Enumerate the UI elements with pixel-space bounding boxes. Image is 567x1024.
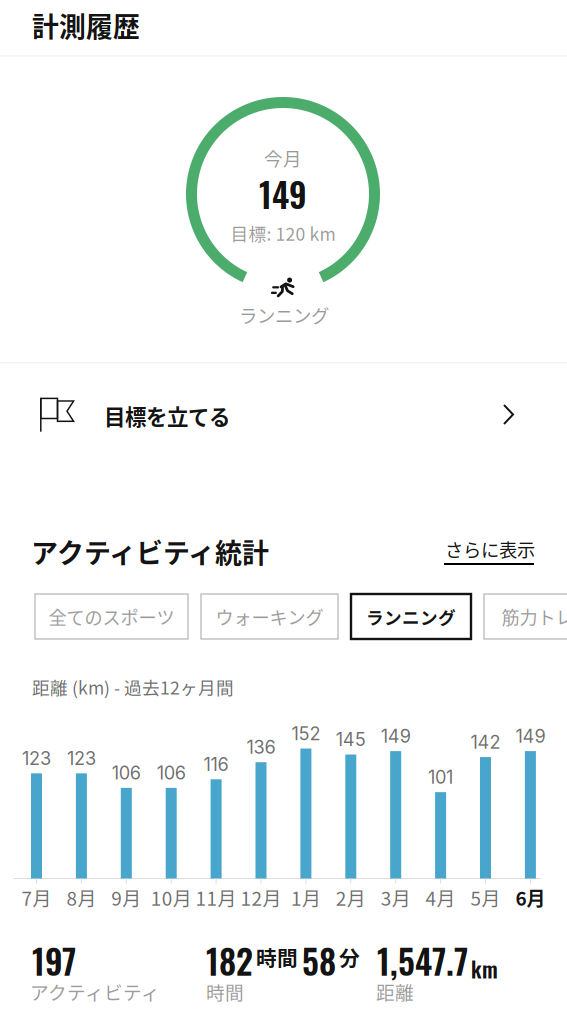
staticText: 149: [381, 725, 411, 747]
staticText: 全てのスポーツ: [48, 603, 174, 630]
staticText: 197: [32, 936, 76, 985]
staticText: 12月: [240, 884, 281, 911]
staticText: 116: [204, 753, 229, 775]
staticText: 5月: [470, 884, 500, 911]
staticText: 距離 (km) - 過去12ヶ月間: [32, 674, 234, 699]
button[interactable]: 目標を立てる: [0, 367, 567, 463]
staticText: 7月: [21, 884, 51, 911]
staticText: 1月: [291, 884, 321, 911]
staticText: 145: [336, 729, 366, 750]
staticText: 106: [112, 762, 141, 784]
staticText: 目標を立てる: [104, 400, 230, 431]
staticText: 分: [339, 942, 360, 972]
staticText: アクティビティ統計: [31, 532, 269, 571]
staticText: 142: [470, 731, 500, 753]
button[interactable]: 筋力トレーニング: [484, 594, 567, 639]
staticText: km: [471, 953, 498, 985]
staticText: 149: [259, 169, 307, 219]
button[interactable]: ウォーキング: [201, 594, 338, 639]
staticText: 今月: [264, 145, 302, 171]
staticText: 計測履歴: [32, 6, 140, 45]
staticText: 筋力トレーニング: [501, 603, 567, 630]
staticText: 101: [428, 766, 453, 788]
staticText: 3月: [381, 884, 411, 911]
staticText: 9月: [111, 884, 141, 911]
staticText: 2月: [336, 884, 366, 911]
button[interactable]: さらに表示: [445, 539, 537, 565]
staticText: 58: [302, 936, 336, 985]
staticText: 106: [157, 762, 186, 784]
staticText: 8月: [66, 884, 96, 911]
staticText: 時間: [206, 978, 244, 1005]
staticText: 1,547.7: [377, 936, 468, 985]
staticText: 11月: [196, 884, 237, 911]
staticText: ウォーキング: [215, 603, 323, 630]
staticText: ランニング: [366, 604, 456, 629]
staticText: 4月: [426, 884, 456, 911]
staticText: 123: [67, 747, 96, 769]
staticText: 149: [515, 725, 545, 747]
staticText: 10月: [151, 884, 192, 911]
staticText: 136: [246, 736, 275, 758]
staticText: 距離: [376, 978, 414, 1005]
staticText: アクティビティ: [30, 978, 160, 1005]
button[interactable]: 全てのスポーツ: [35, 594, 188, 639]
staticText: ランニング: [239, 302, 329, 328]
staticText: 123: [22, 747, 51, 769]
staticText: 目標: 120 km: [230, 220, 335, 246]
staticText: 152: [291, 723, 320, 744]
staticText: 6月: [515, 884, 545, 911]
button[interactable]: ランニング: [351, 594, 471, 639]
staticText: 時間: [256, 942, 298, 972]
staticText: 182: [206, 936, 253, 985]
staticText: さらに表示: [445, 536, 535, 562]
